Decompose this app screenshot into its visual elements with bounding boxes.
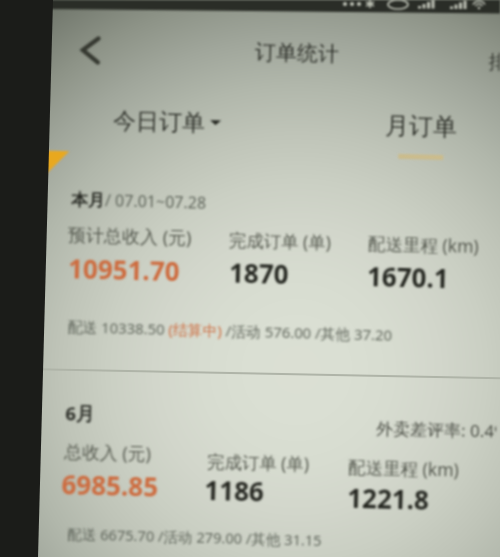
button[interactable]: 今日订单 [113,106,221,138]
button[interactable]: Back [72,32,107,67]
staticText: 配送 6675.70 /活动 279.00 /其他 31.15 [67,523,322,550]
staticText: 月订单 [385,110,457,142]
staticText: 订单统计 [255,39,339,67]
staticText: 配送里程 (km) [368,231,479,258]
staticText: 1221.8 [347,480,430,517]
staticText: 外卖差评率: 0.4% [376,416,500,443]
button[interactable]: 排行 [488,50,500,75]
staticText: 今日订单 [113,106,205,138]
staticText: 总收入 (元) [64,439,152,465]
staticText: 本月 [71,189,105,211]
staticText: 预计总收入 (元) [68,222,192,250]
staticText: 完成订单 (单) [229,227,331,254]
staticText: / 07.01~07.28 [105,189,207,214]
staticText: 配送 10338.50 (结算中) /活动 576.00 /其他 37.20 [67,316,393,345]
staticText: 完成订单 (单) [207,449,309,476]
staticText: 1670.1 [367,258,450,295]
staticText: 排行 [488,50,500,75]
staticText: 6985.85 [61,466,159,504]
staticText: 1186 [204,472,265,508]
staticText: 配送里程 (km) [348,455,459,481]
button[interactable]: 月订单 [384,110,457,160]
staticText: 1870 [229,254,290,291]
staticText: 6月 [65,400,96,426]
staticText: 10951.70 [68,250,181,288]
